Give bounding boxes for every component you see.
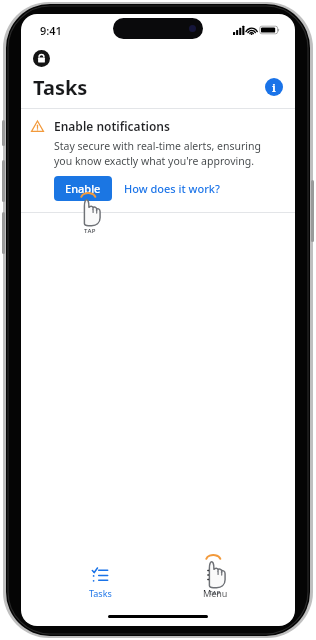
staticText: Enable xyxy=(65,181,101,196)
staticText: Stay secure with real-time alerts, ensur… xyxy=(54,139,281,168)
staticText: Enable notifications xyxy=(54,118,170,134)
staticText: Tasks xyxy=(89,587,112,599)
button[interactable]: Tasks xyxy=(65,564,135,602)
button[interactable]: Information xyxy=(265,78,283,96)
staticText: How does it work? xyxy=(124,181,220,196)
staticText: Menu xyxy=(203,587,228,599)
staticText: Tasks xyxy=(33,74,88,101)
staticText: i xyxy=(272,80,276,95)
button[interactable]: Enable xyxy=(54,176,112,201)
staticText: 9:41 xyxy=(40,23,62,38)
button[interactable]: Secure xyxy=(33,50,50,67)
button[interactable]: Menu xyxy=(180,564,250,602)
staticText: TAP xyxy=(209,589,221,597)
button[interactable]: How does it work? xyxy=(124,177,220,200)
staticText: TAP xyxy=(84,227,96,235)
